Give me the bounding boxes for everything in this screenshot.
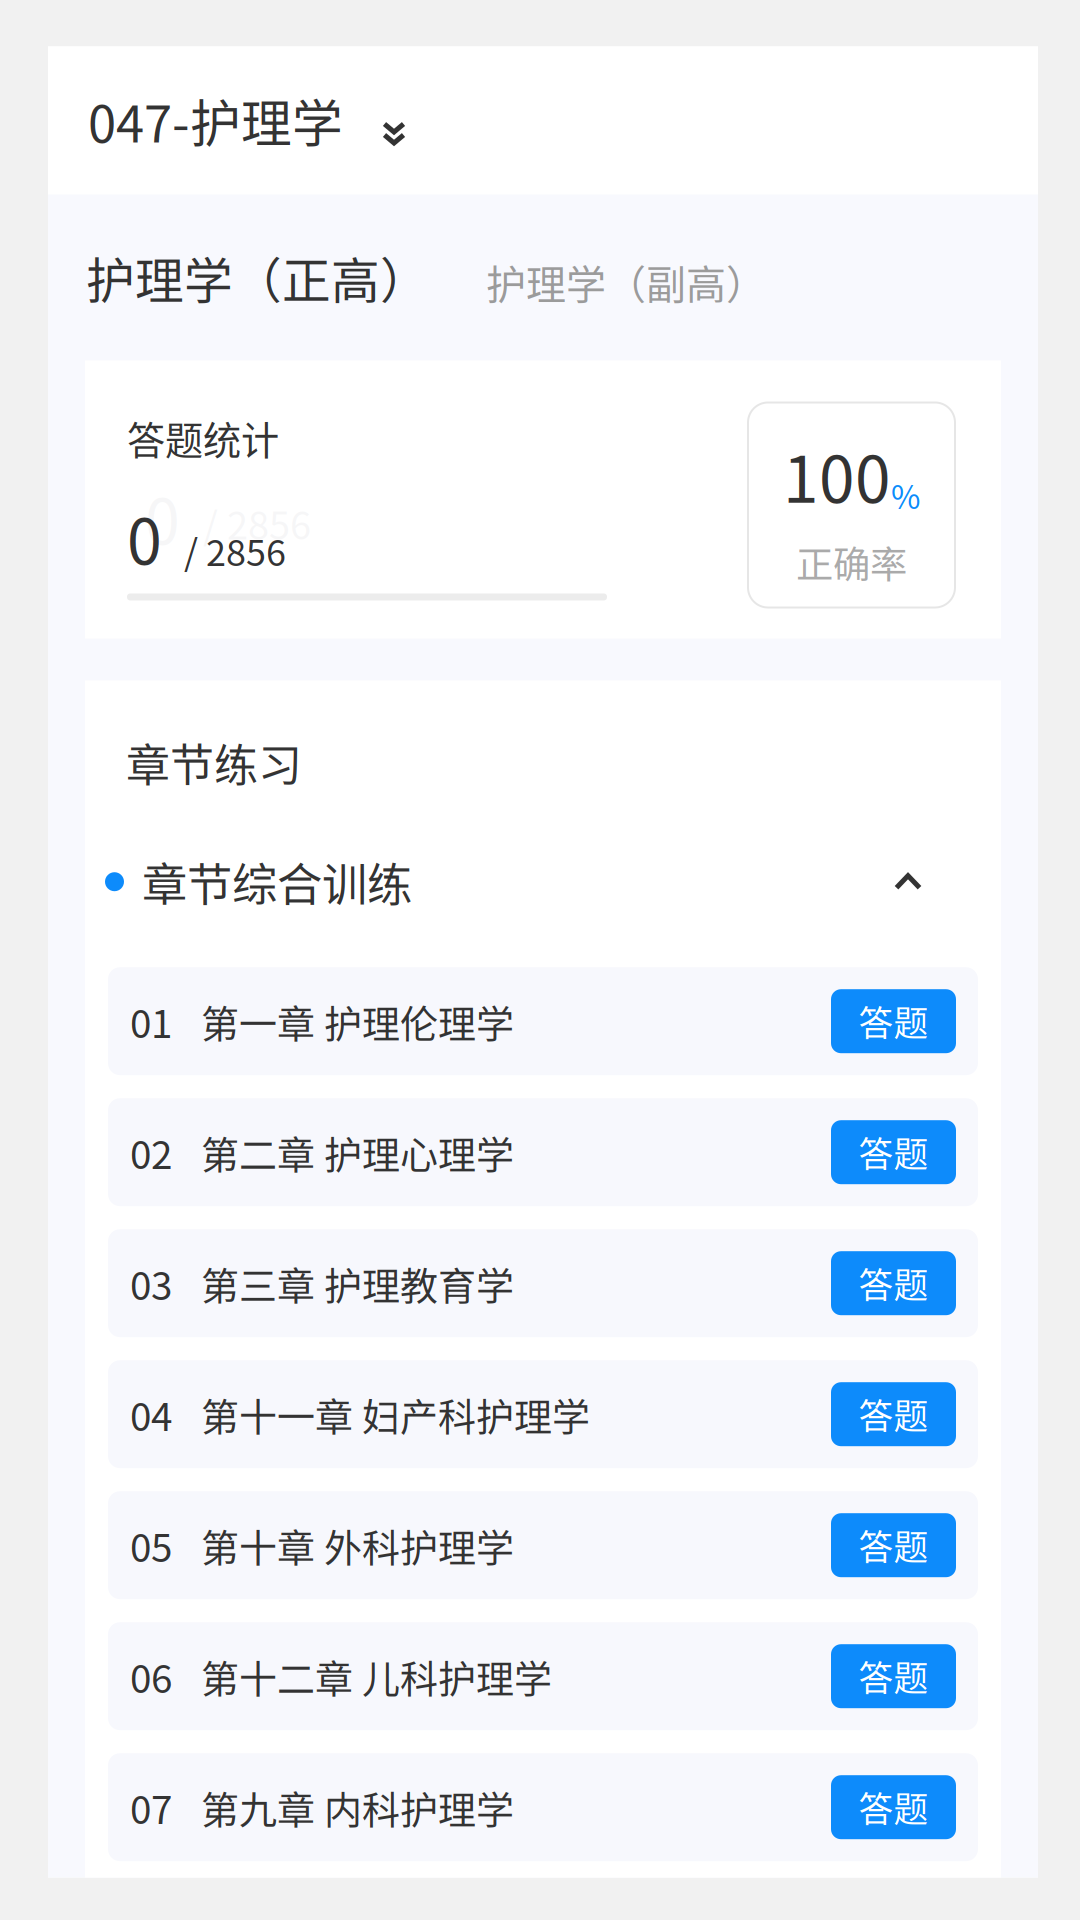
staticText: 0: [127, 492, 162, 582]
staticText: 02: [130, 1124, 172, 1180]
staticText: 章节练习: [126, 730, 302, 794]
staticText: %: [891, 472, 920, 518]
button[interactable]: 章节综合训练: [85, 849, 1001, 914]
staticText: 护理学（副高）: [486, 253, 766, 311]
staticText: 第二章 护理心理学: [201, 1125, 514, 1180]
staticText: 答题: [858, 1651, 928, 1701]
staticText: 04: [130, 1386, 172, 1442]
button[interactable]: 答题: [831, 989, 956, 1053]
staticText: / 2856: [203, 495, 311, 550]
staticText: 答题: [858, 1520, 928, 1570]
button[interactable]: 答题: [831, 1120, 956, 1184]
staticText: 第一章 护理伦理学: [201, 994, 514, 1049]
button[interactable]: 护理学（正高）: [86, 242, 429, 313]
staticText: 100: [783, 428, 891, 521]
staticText: 章节综合训练: [142, 849, 412, 914]
button[interactable]: 06: [108, 1622, 978, 1730]
staticText: 正确率: [796, 535, 907, 589]
staticText: 06: [130, 1648, 172, 1704]
staticText: 第十一章 妇产科护理学: [201, 1387, 590, 1442]
staticText: 答题统计: [127, 410, 279, 466]
staticText: 03: [130, 1255, 172, 1311]
staticText: 第三章 护理教育学: [201, 1256, 514, 1311]
button[interactable]: 答题: [831, 1382, 956, 1446]
button[interactable]: 05: [108, 1491, 978, 1599]
staticText: 0: [145, 472, 180, 562]
staticText: 第十二章 儿科护理学: [201, 1649, 552, 1704]
staticText: 护理学（正高）: [86, 242, 429, 313]
button[interactable]: 07: [108, 1753, 978, 1861]
staticText: 01: [130, 993, 172, 1049]
button[interactable]: 护理学（副高）: [486, 253, 766, 313]
staticText: 047-护理学: [88, 84, 343, 157]
button[interactable]: 答题: [831, 1513, 956, 1577]
staticText: 第九章 内科护理学: [201, 1780, 514, 1835]
button[interactable]: 03: [108, 1229, 978, 1337]
button[interactable]: 047-护理学: [48, 46, 1038, 194]
button[interactable]: 答题: [831, 1775, 956, 1839]
staticText: 答题: [858, 996, 928, 1046]
button[interactable]: 答题: [831, 1644, 956, 1708]
staticText: 答题: [858, 1258, 928, 1308]
staticText: / 2856: [184, 524, 286, 576]
button[interactable]: 答题: [831, 1251, 956, 1315]
staticText: 答题: [858, 1127, 928, 1177]
staticText: 答题: [858, 1389, 928, 1439]
staticText: 07: [130, 1779, 172, 1835]
button[interactable]: 01: [108, 967, 978, 1075]
staticText: 答题: [858, 1782, 928, 1832]
staticText: 第十章 外科护理学: [201, 1518, 514, 1573]
staticText: 05: [130, 1517, 172, 1573]
button[interactable]: 02: [108, 1098, 978, 1206]
button[interactable]: 04: [108, 1360, 978, 1468]
